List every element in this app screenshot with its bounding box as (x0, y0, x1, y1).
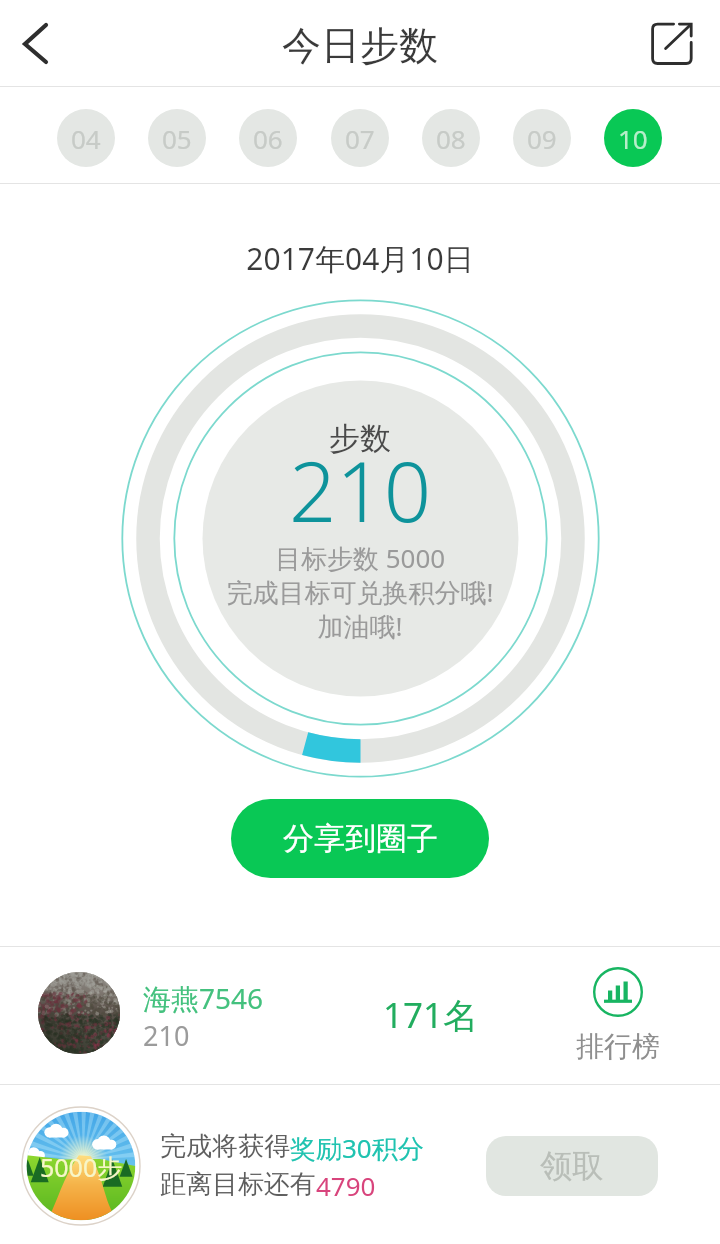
staticText: 05 (162, 121, 192, 156)
button[interactable]: 05 (148, 109, 206, 167)
staticText: 步数 (0, 419, 720, 458)
staticText: 06 (253, 121, 283, 156)
button[interactable]: 06 (239, 109, 297, 167)
button[interactable]: 04 (57, 109, 115, 167)
staticText: 领取 (540, 1146, 604, 1186)
staticText: 今日步数 (282, 21, 438, 70)
button[interactable]: 07 (331, 109, 389, 167)
staticText: 距离目标还有 (160, 1168, 316, 1201)
staticText: 171名 (383, 991, 479, 1039)
staticText: 分享到圈子 (283, 819, 438, 858)
staticText: 210 (0, 433, 720, 546)
staticText: 10 (618, 121, 648, 156)
staticText: 210 (143, 1017, 190, 1054)
staticText: 08 (436, 121, 466, 156)
button[interactable]: 海燕7546 (0, 947, 720, 1084)
button[interactable]: 排行榜 (563, 959, 673, 1071)
staticText: 排行榜 (576, 1029, 660, 1064)
button[interactable]: 09 (513, 109, 571, 167)
staticText: 5000步 (40, 1150, 123, 1184)
button[interactable]: 08 (422, 109, 480, 167)
staticText: 09 (527, 121, 557, 156)
button[interactable]: 分享到圈子 (231, 799, 489, 878)
staticText: 07 (345, 121, 375, 156)
button[interactable]: 10 (604, 109, 662, 167)
button[interactable]: Share (632, 0, 720, 87)
staticText: 2017年04月10日 (0, 238, 720, 279)
staticText: 目标步数 5000 完成目标可兑换积分哦! 加油哦! (0, 540, 720, 644)
button[interactable]: 领取 (486, 1136, 658, 1196)
staticText: 海燕7546 (143, 979, 264, 1017)
staticText: 奖励30积分 (290, 1130, 424, 1166)
staticText: 4790 (316, 1168, 376, 1203)
staticText: 04 (71, 121, 101, 156)
button[interactable]: Back (0, 0, 88, 87)
staticText: 完成将获得 (160, 1130, 290, 1163)
